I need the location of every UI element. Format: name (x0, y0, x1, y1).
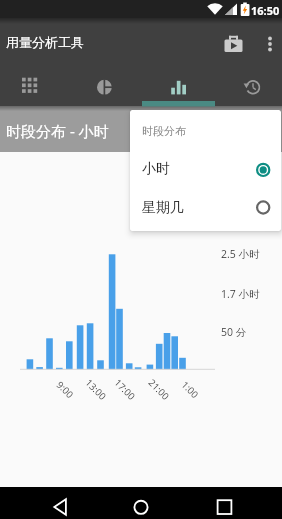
staticText: 13:00 (83, 376, 109, 403)
staticText: 2.5 小时 (221, 247, 260, 261)
staticText: 时段分布 - 小时 (6, 121, 109, 141)
staticText: 用量分析工具 (6, 34, 84, 50)
button[interactable]: 星期几 (130, 188, 281, 227)
button[interactable] (67, 62, 141, 106)
staticText: 21:00 (146, 376, 172, 403)
button[interactable] (254, 22, 282, 58)
button[interactable] (40, 492, 80, 519)
button[interactable]: 小时 (130, 150, 281, 188)
staticText: 50 分 (221, 325, 247, 339)
staticText: 小时 (142, 160, 170, 178)
staticText: 16:50 (251, 3, 280, 18)
staticText: 9:00 (54, 378, 76, 401)
staticText: 时段分布 (142, 124, 186, 138)
button[interactable] (0, 62, 66, 106)
button[interactable] (121, 492, 161, 519)
button[interactable] (216, 62, 282, 106)
staticText: 1:00 (179, 378, 201, 401)
button[interactable] (141, 62, 215, 106)
staticText: 星期几 (142, 199, 184, 217)
button[interactable] (204, 492, 244, 519)
staticText: 17:00 (112, 376, 138, 403)
staticText: 1.7 小时 (221, 287, 260, 301)
button[interactable] (216, 22, 252, 58)
